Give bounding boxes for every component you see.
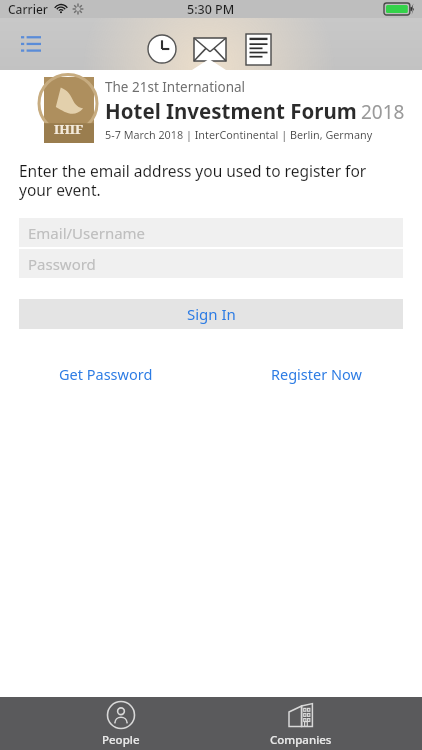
button[interactable]: Schedule <box>141 28 183 70</box>
staticText: Register Now <box>271 364 362 384</box>
staticText: Companies <box>270 732 332 748</box>
staticText: Carrier <box>8 1 48 17</box>
staticText: The 21st International <box>105 78 246 96</box>
staticText: 2018 <box>361 99 405 125</box>
staticText: 5-7 March 2018 | InterContinental | Berl… <box>105 127 373 142</box>
button[interactable]: Register Now <box>211 364 422 384</box>
staticText: People <box>102 732 140 748</box>
staticText: IHIF <box>54 120 84 138</box>
staticText: 5:30 PM <box>187 1 235 18</box>
button[interactable]: Menu <box>14 27 48 61</box>
button[interactable]: Companies <box>241 697 361 750</box>
button[interactable]: Messages <box>189 28 231 70</box>
button[interactable]: Email/Username <box>19 218 403 247</box>
button[interactable]: Documents <box>237 28 279 70</box>
button[interactable]: Get Password <box>0 364 211 384</box>
button[interactable]: Password <box>19 249 403 278</box>
button[interactable]: Sign In <box>19 299 403 329</box>
staticText: Password <box>28 254 96 274</box>
staticText: Enter the email address you used to regi… <box>19 160 403 200</box>
staticText: Get Password <box>59 364 153 384</box>
staticText: Hotel Investment Forum <box>105 97 357 125</box>
staticText: Sign In <box>187 304 236 324</box>
staticText: Email/Username <box>28 223 146 243</box>
button[interactable]: People <box>61 697 181 750</box>
